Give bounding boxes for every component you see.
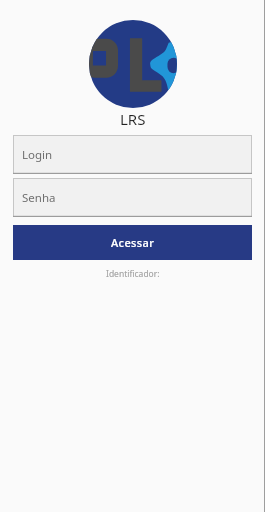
staticText: LRS — [120, 109, 146, 129]
other: LRS logo — [89, 20, 177, 108]
staticText: Login — [22, 147, 53, 163]
button[interactable]: Acessar — [13, 225, 252, 260]
staticText: Acessar — [111, 235, 155, 250]
button[interactable]: Login — [13, 135, 252, 174]
staticText: Senha — [22, 190, 56, 206]
button[interactable]: Senha — [13, 178, 252, 217]
staticText: Identificador: — [106, 268, 160, 280]
